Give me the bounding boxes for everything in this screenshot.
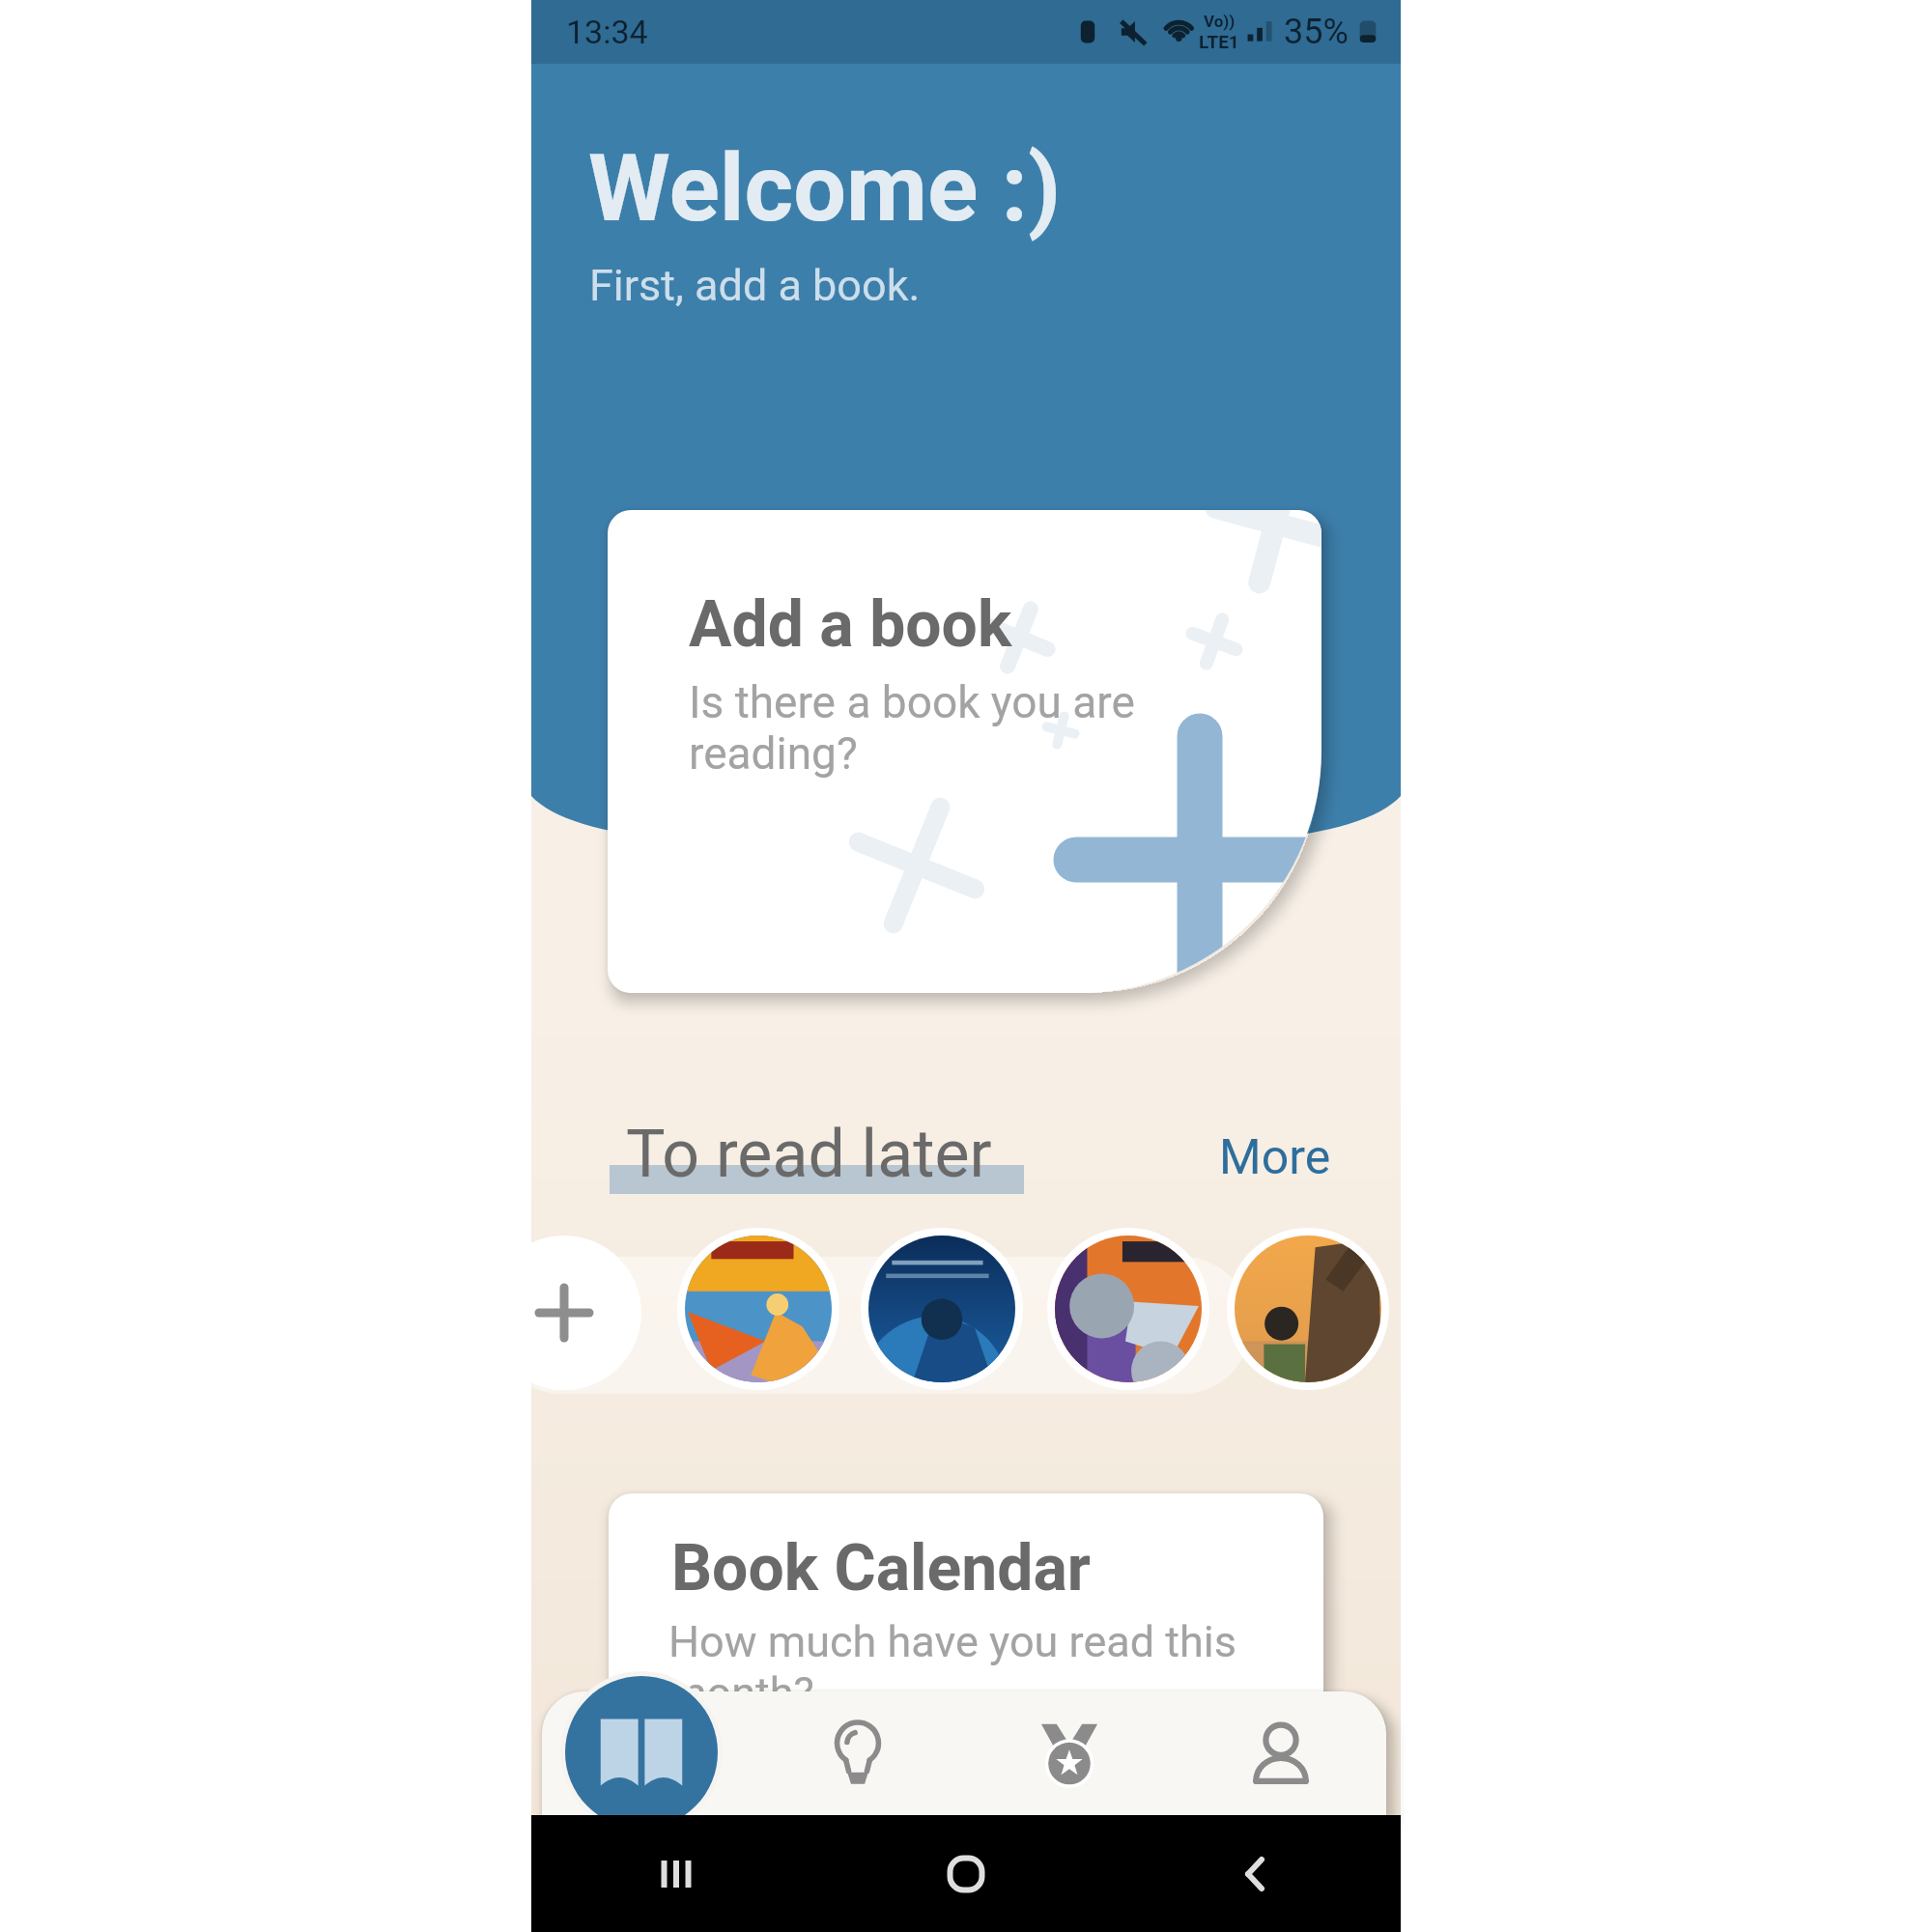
button[interactable]: Profile [1175, 1691, 1386, 1815]
button[interactable]: Book 1 [677, 1228, 839, 1390]
button[interactable]: Add a book [608, 510, 1321, 993]
button[interactable]: Add book [487, 1236, 641, 1390]
staticText: More [1219, 1129, 1331, 1186]
staticText: 35% [1284, 12, 1349, 52]
button[interactable]: Books [560, 1671, 723, 1833]
staticText: Vo)) [1204, 12, 1236, 31]
button[interactable]: Book 4 [1227, 1228, 1389, 1390]
button[interactable]: Home [821, 1815, 1111, 1932]
staticText: To read later [626, 1116, 992, 1193]
button[interactable]: Ideas [753, 1691, 963, 1815]
staticText: Book Calendar [671, 1531, 1091, 1605]
button[interactable]: More [1207, 1122, 1343, 1194]
staticText: How much have you read this month? [668, 1616, 1272, 1719]
button[interactable]: Book Calendar [609, 1493, 1323, 1899]
staticText: 13:34 [566, 13, 648, 51]
button[interactable]: Awards [963, 1691, 1175, 1815]
staticText: Welcome :) [588, 133, 1062, 243]
button[interactable]: Book 2 [861, 1228, 1023, 1390]
button[interactable]: Back [1111, 1815, 1401, 1932]
staticText: LTE1 [1199, 31, 1239, 52]
button[interactable]: Recent apps [531, 1815, 821, 1932]
staticText: Is there a book you are reading? [689, 676, 1145, 780]
staticText: First, add a book. [589, 260, 921, 311]
staticText: Add a book [689, 587, 1012, 662]
button[interactable]: Book 3 [1047, 1228, 1209, 1390]
